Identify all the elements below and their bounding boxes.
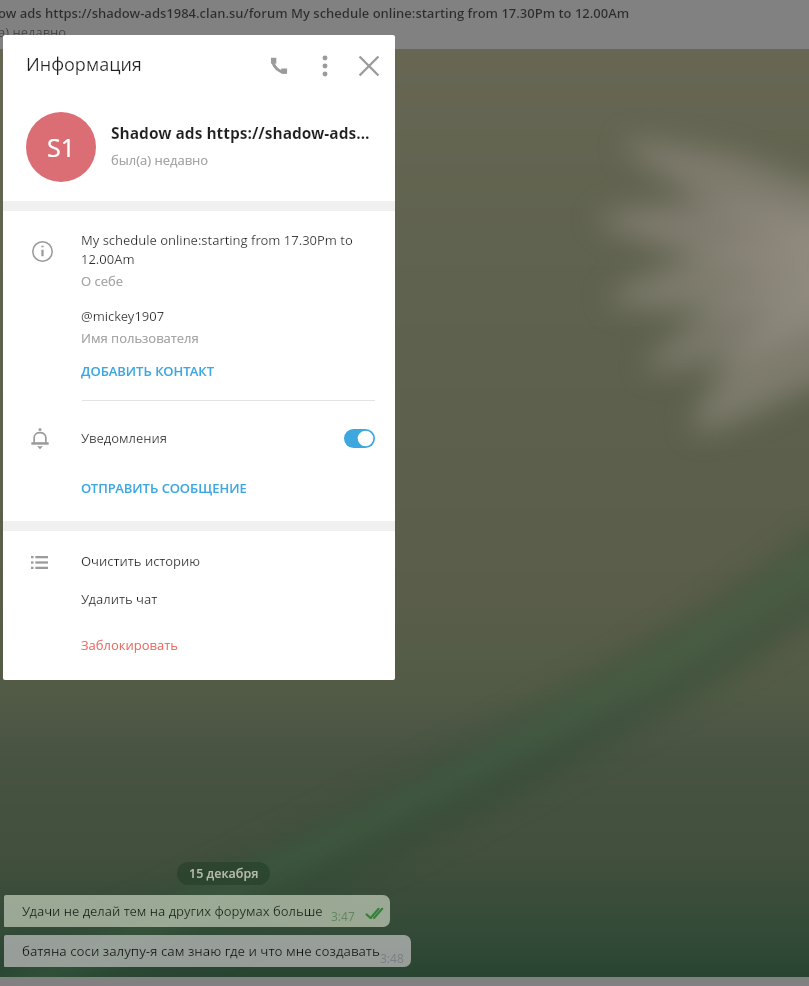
staticText: был(а) недавно bbox=[111, 151, 209, 169]
staticText: Shadow ads https://shadow-ads… bbox=[111, 122, 370, 143]
staticText: Имя пользователя bbox=[81, 329, 199, 347]
button[interactable]: Notifications toggle bbox=[344, 429, 375, 448]
staticText: S1 bbox=[47, 130, 76, 164]
staticText: ОТПРАВИТЬ СООБЩЕНИЕ bbox=[81, 479, 247, 497]
staticText: батяна соси залупу-я сам знаю где и что … bbox=[22, 942, 380, 960]
staticText: My schedule online:starting from 17.30Pm… bbox=[81, 231, 353, 268]
button[interactable]: Call bbox=[258, 45, 300, 87]
button[interactable]: Удалить чат bbox=[81, 590, 158, 608]
button[interactable]: ОТПРАВИТЬ СООБЩЕНИЕ bbox=[81, 479, 247, 497]
staticText: О себе bbox=[81, 272, 124, 290]
staticText: Удалить чат bbox=[81, 590, 158, 608]
staticText: Заблокировать bbox=[81, 636, 178, 654]
staticText: Уведомления bbox=[81, 429, 168, 447]
staticText: 3:48 bbox=[380, 950, 404, 966]
staticText: Удачи не делай тем на других форумах бол… bbox=[22, 902, 323, 920]
button[interactable]: Очистить историю bbox=[81, 552, 201, 570]
staticText: ДОБАВИТЬ КОНТАКТ bbox=[81, 362, 214, 380]
staticText: Очистить историю bbox=[81, 552, 201, 570]
staticText: 3:47 bbox=[331, 908, 355, 924]
button[interactable]: Заблокировать bbox=[81, 636, 178, 654]
staticText: @mickey1907 bbox=[81, 307, 165, 325]
staticText: 15 декабря bbox=[189, 865, 259, 882]
button[interactable]: ДОБАВИТЬ КОНТАКТ bbox=[81, 362, 214, 380]
button[interactable]: Close bbox=[348, 45, 390, 87]
staticText: Информация bbox=[26, 52, 142, 77]
staticText: а) недавно bbox=[0, 23, 67, 41]
button[interactable]: More options bbox=[304, 45, 346, 87]
staticText: ow ads https://shadow-ads1984.clan.su/fo… bbox=[0, 4, 630, 22]
